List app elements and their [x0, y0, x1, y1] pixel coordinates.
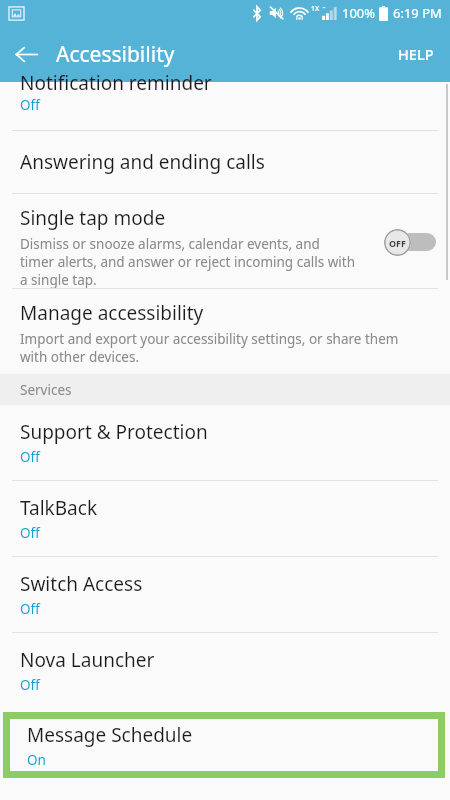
staticText: Manage accessibility — [20, 300, 204, 326]
button[interactable]: Nova Launcher — [0, 633, 450, 708]
staticText: Services — [20, 381, 72, 399]
button[interactable]: Notification reminder — [0, 82, 450, 130]
button[interactable]: Switch Access — [0, 557, 450, 632]
staticText: Nova Launcher — [20, 647, 155, 673]
staticText: Accessibility — [56, 40, 175, 69]
staticText: a single tap. — [20, 271, 97, 288]
staticText: Import and export your accessibility set… — [20, 330, 399, 348]
button[interactable]: Navigate up — [0, 28, 52, 80]
button[interactable]: Message Schedule — [10, 719, 438, 771]
staticText: 6:19 PM — [393, 4, 442, 22]
staticText: Single tap mode — [20, 205, 166, 231]
button[interactable]: Manage accessibility — [0, 289, 450, 374]
staticText: timer alerts, and answer or reject incom… — [20, 253, 355, 271]
staticText: HELP — [398, 44, 434, 64]
staticText: Dismiss or snooze alarms, calendar event… — [20, 235, 320, 253]
staticText: Off — [20, 448, 40, 466]
staticText: Support & Protection — [20, 419, 208, 445]
staticText: On — [27, 751, 46, 769]
button[interactable]: HELP — [382, 26, 450, 82]
button[interactable]: Support & Protection — [0, 405, 450, 480]
staticText: Off — [20, 524, 40, 542]
staticText: Switch Access — [20, 571, 143, 597]
staticText: 1X — [311, 4, 320, 14]
button[interactable]: Single tap mode switch, off — [384, 227, 438, 257]
staticText: Message Schedule — [27, 722, 193, 748]
staticText: OFF — [389, 237, 407, 249]
staticText: Notification reminder — [20, 70, 212, 96]
staticText: with other devices. — [20, 348, 140, 366]
staticText: TalkBack — [20, 495, 98, 521]
staticText: Off — [20, 96, 40, 114]
button[interactable]: TalkBack — [0, 481, 450, 556]
staticText: Off — [20, 600, 40, 618]
staticText: Off — [20, 676, 40, 694]
button[interactable]: Single tap mode — [0, 194, 450, 288]
staticText: Answering and ending calls — [20, 149, 265, 175]
button[interactable]: Answering and ending calls — [0, 131, 450, 193]
staticText: 100% — [342, 4, 376, 22]
